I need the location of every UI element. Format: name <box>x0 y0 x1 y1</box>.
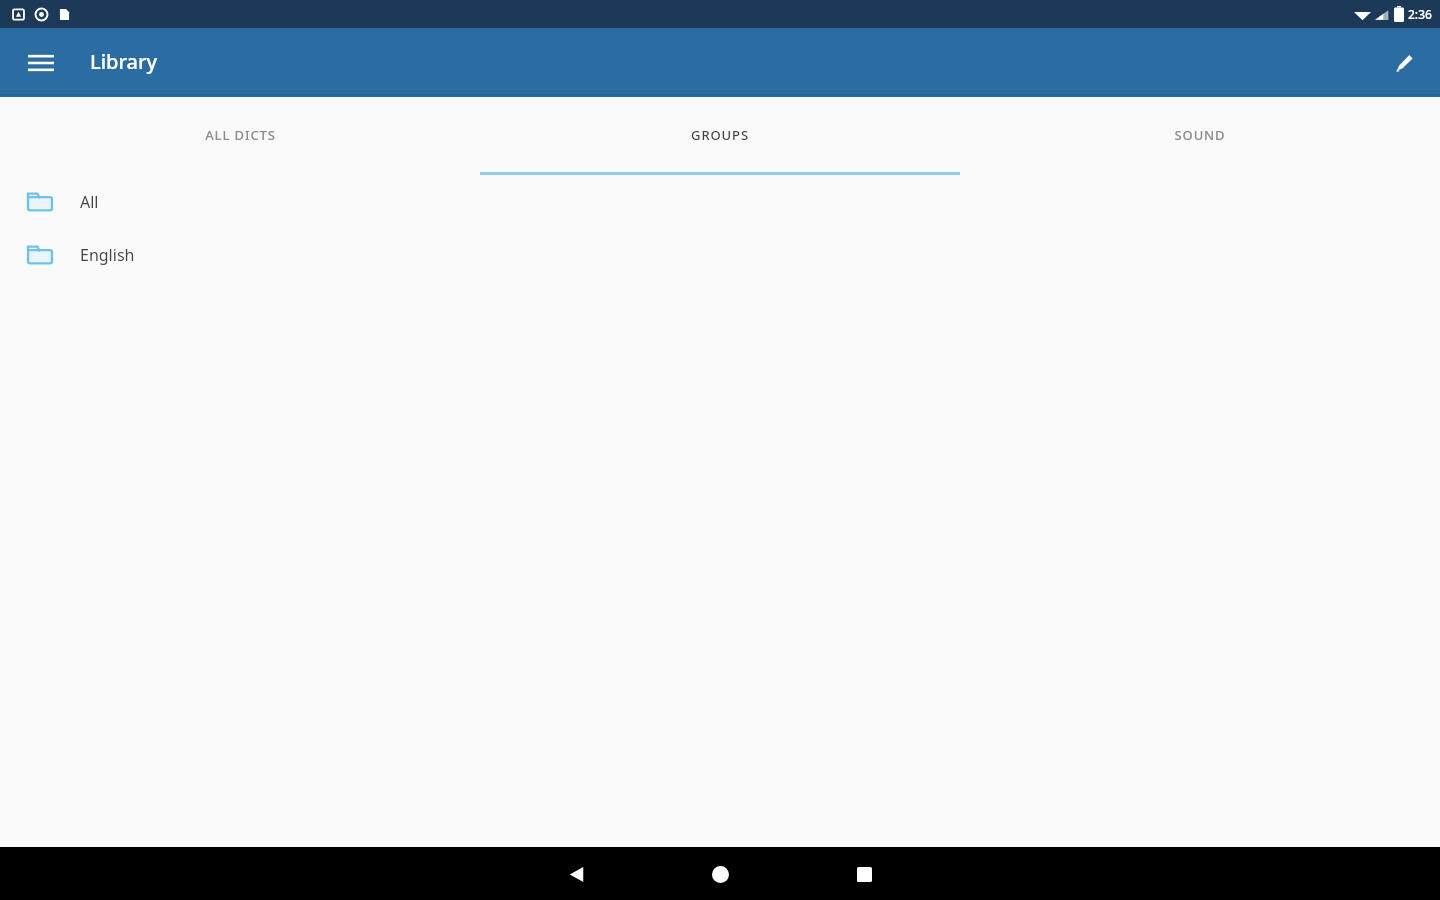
button[interactable]: Open navigation drawer <box>17 39 65 87</box>
button[interactable]: All <box>0 175 1440 228</box>
staticText: Library <box>90 48 157 75</box>
staticText: SOUND <box>1174 126 1226 144</box>
staticText: ALL DICTS <box>205 126 276 144</box>
staticText: 2:36 <box>1408 6 1432 22</box>
button[interactable]: English <box>0 228 1440 281</box>
staticText: GROUPS <box>691 126 749 144</box>
button[interactable]: ALL DICTS <box>0 97 480 175</box>
button[interactable]: GROUPS <box>480 97 960 175</box>
button[interactable]: Recent apps <box>840 850 888 898</box>
staticText: English <box>80 244 135 266</box>
button[interactable]: Home <box>696 850 744 898</box>
button[interactable]: Edit <box>1380 39 1428 87</box>
button[interactable]: SOUND <box>960 97 1440 175</box>
staticText: All <box>80 191 99 213</box>
button[interactable]: Back <box>552 850 600 898</box>
